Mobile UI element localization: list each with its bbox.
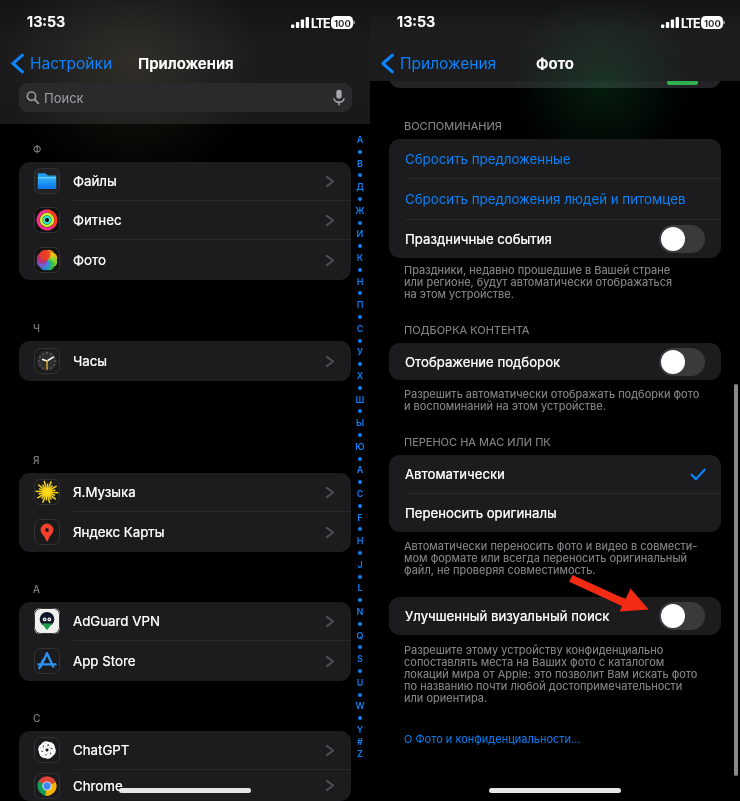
button[interactable]: Переносить оригиналы <box>389 494 721 532</box>
staticText: Ж <box>353 205 367 216</box>
staticText: Я.Музыка <box>73 484 136 500</box>
staticText: 100 <box>334 18 351 29</box>
staticText: И <box>353 228 367 239</box>
staticText: N <box>353 606 367 617</box>
staticText: LTE <box>311 16 330 31</box>
staticText: H <box>353 535 367 546</box>
staticText: Настройки <box>30 54 113 73</box>
staticText: Приложения <box>138 54 234 72</box>
staticText: Фитнес <box>73 212 122 228</box>
staticText: App Store <box>73 653 136 669</box>
staticText: Д <box>353 181 367 192</box>
staticText: Ш <box>353 394 367 405</box>
button[interactable]: Часы <box>19 341 351 381</box>
staticText: L <box>353 582 367 593</box>
staticText: Улучшенный визуальный поиск <box>405 608 610 624</box>
staticText: Переносить оригиналы <box>405 505 557 521</box>
button[interactable]: Настройки <box>0 50 121 77</box>
staticText: Х <box>353 370 367 381</box>
button[interactable]: Автоматически <box>389 455 721 493</box>
staticText: Разрешить автоматически отображать подбо… <box>404 387 700 413</box>
staticText: Сбросить предложенные <box>405 151 571 167</box>
staticText: Сбросить предложения людей и питомцев <box>405 191 686 207</box>
staticText: Праздничные события <box>405 231 552 247</box>
staticText: К <box>353 252 367 263</box>
staticText: В <box>353 158 367 169</box>
staticText: Разрешите этому устройству конфиденциаль… <box>404 643 698 705</box>
staticText: A <box>33 583 40 595</box>
staticText: Отображение подборок <box>405 354 561 370</box>
staticText: Z <box>353 748 367 759</box>
staticText: ChatGPT <box>73 742 130 758</box>
staticText: Приложения <box>400 54 497 73</box>
staticText: J <box>353 559 367 570</box>
button[interactable]: Файлы <box>19 162 351 201</box>
staticText: Автоматически <box>405 466 505 482</box>
staticText: С <box>353 488 367 499</box>
button[interactable]: Я.Музыка <box>19 473 351 512</box>
staticText: ПЕРЕНОС НА MAC ИЛИ ПК <box>404 435 551 448</box>
staticText: Ф <box>33 143 42 155</box>
staticText: S <box>353 653 367 664</box>
staticText: Поиск <box>44 90 84 106</box>
other: Диктовка <box>333 89 345 106</box>
staticText: Ч <box>33 322 41 334</box>
staticText: U <box>353 677 367 688</box>
staticText: Яндекс Карты <box>73 524 165 540</box>
staticText: Chrome <box>73 778 123 794</box>
staticText: W <box>353 700 367 711</box>
staticText: # <box>353 736 367 747</box>
button[interactable]: Поиск <box>19 83 352 112</box>
staticText: Y <box>353 724 367 735</box>
staticText: У <box>353 346 367 357</box>
staticText: Ы <box>353 417 367 428</box>
button[interactable]: О Фото и конфиденциальности... <box>404 732 581 745</box>
staticText: LTE <box>681 16 700 31</box>
staticText: F <box>353 512 367 523</box>
staticText: C <box>33 712 41 724</box>
button[interactable]: Праздничные события <box>389 220 721 258</box>
staticText: 13:53 <box>397 13 436 31</box>
button[interactable]: Алфавитный указатель <box>353 134 367 145</box>
staticText: Фото <box>536 54 574 72</box>
staticText: ВОСПОМИНАНИЯ <box>404 119 502 132</box>
staticText: Часы <box>73 353 108 369</box>
button[interactable]: App Store <box>19 641 351 681</box>
button[interactable]: Сбросить предложенные <box>389 139 721 178</box>
staticText: О Фото и конфиденциальности... <box>404 732 581 745</box>
staticText: Я <box>33 454 40 466</box>
button[interactable]: ChatGPT <box>19 731 351 770</box>
button[interactable]: Приложения <box>370 50 505 77</box>
staticText: Ю <box>353 441 367 452</box>
staticText: П <box>353 299 367 310</box>
button[interactable]: AdGuard VPN <box>19 602 351 641</box>
button[interactable]: Фитнес <box>19 201 351 240</box>
staticText: AdGuard VPN <box>73 613 160 629</box>
button[interactable]: Сбросить предложения людей и питомцев <box>389 179 721 219</box>
staticText: 100 <box>704 18 721 29</box>
other: Выбрано <box>691 469 705 480</box>
staticText: А <box>353 464 367 475</box>
button[interactable]: Отображение подборок <box>389 343 721 380</box>
staticText: С <box>353 323 367 334</box>
button[interactable]: Chrome <box>19 770 351 801</box>
staticText: А <box>353 134 367 145</box>
staticText: 13:53 <box>27 13 66 31</box>
staticText: Праздники, недавно прошедшие в Вашей стр… <box>404 263 673 301</box>
staticText: Q <box>353 630 367 641</box>
staticText: Файлы <box>73 173 117 189</box>
staticText: Автоматически переносить фото и видео в … <box>404 539 698 577</box>
staticText: ПОДБОРКА КОНТЕНТА <box>404 323 530 336</box>
staticText: Фото <box>73 252 106 268</box>
button[interactable]: Яндекс Карты <box>19 512 351 552</box>
staticText: Н <box>353 276 367 287</box>
button[interactable]: Улучшенный визуальный поиск <box>389 597 721 635</box>
button[interactable]: Фото <box>19 240 351 280</box>
